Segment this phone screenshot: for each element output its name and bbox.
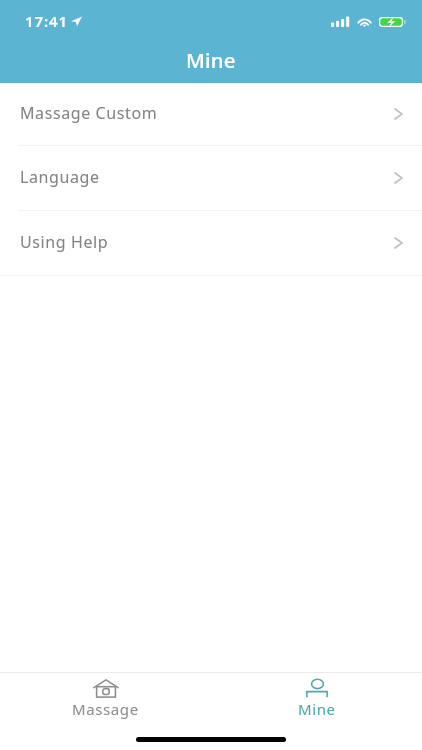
staticText: Massage Custom <box>20 102 158 124</box>
staticText: 17:41 <box>25 11 68 31</box>
staticText: Mine <box>186 46 236 74</box>
staticText: Language <box>20 166 100 188</box>
staticText: Massage <box>72 699 139 719</box>
button[interactable]: Massage Custom <box>0 83 422 145</box>
other: Massage <box>93 679 119 698</box>
button[interactable]: Mine <box>211 673 422 750</box>
other: Mine <box>306 679 328 698</box>
staticText: Mine <box>298 699 336 719</box>
button[interactable]: Massage <box>0 673 211 750</box>
staticText: Using Help <box>20 231 109 253</box>
button[interactable]: Using Help <box>0 211 422 275</box>
button[interactable]: Language <box>0 146 422 210</box>
